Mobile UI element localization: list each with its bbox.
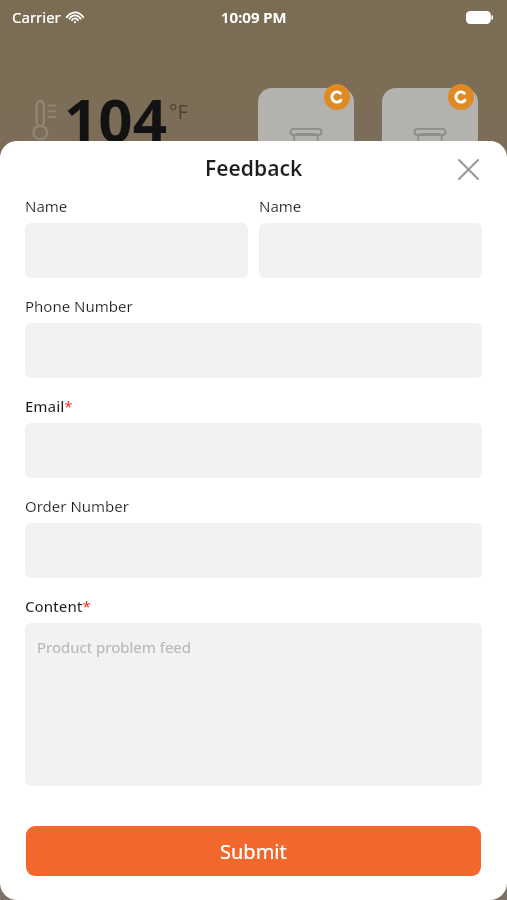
button[interactable]: Refresh	[324, 84, 350, 110]
staticText: Name	[259, 196, 302, 216]
staticText: Product problem feed	[37, 637, 192, 657]
staticText: 10:09 PM	[221, 7, 287, 27]
staticText: Phone Number	[25, 296, 133, 316]
button[interactable]: Submit	[26, 826, 481, 876]
staticText: Content*	[25, 596, 91, 616]
staticText: Feedback	[205, 154, 303, 183]
staticText: Name	[25, 196, 68, 216]
button[interactable]	[258, 88, 354, 168]
staticText: °F	[169, 98, 188, 125]
button[interactable]	[382, 88, 478, 168]
staticText: Email*	[25, 396, 73, 416]
button[interactable]: Close	[451, 152, 485, 186]
staticText: Submit	[220, 838, 287, 865]
staticText: Carrier	[12, 7, 61, 27]
staticText: Order Number	[25, 496, 129, 516]
button[interactable]: Refresh	[448, 84, 474, 110]
staticText: 104	[64, 78, 167, 160]
button[interactable]: Product problem feed	[25, 623, 482, 786]
